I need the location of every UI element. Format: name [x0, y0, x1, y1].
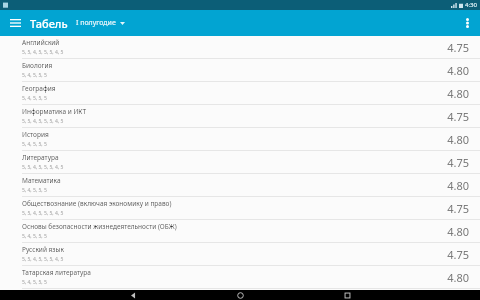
- button[interactable]: Основы безопасности жизнедеятельности (О…: [0, 220, 480, 243]
- staticText: Основы безопасности жизнедеятельности (О…: [22, 222, 177, 231]
- button[interactable]: More options: [454, 10, 480, 36]
- staticText: Английский: [22, 38, 60, 47]
- staticText: 4.75: [447, 201, 469, 216]
- staticText: Информатика и ИКТ: [22, 107, 87, 116]
- button[interactable]: Татарская литература: [0, 266, 480, 289]
- staticText: 4.80: [447, 224, 469, 239]
- staticText: Литература: [22, 153, 59, 162]
- staticText: 4.80: [447, 178, 469, 193]
- button[interactable]: Биология: [0, 59, 480, 82]
- staticText: 4.80: [447, 86, 469, 101]
- staticText: 5, 5, 4, 5, 5, 5, 4, 5: [22, 210, 64, 217]
- staticText: I полугодие: [76, 18, 116, 28]
- staticText: Татарская литература: [22, 268, 91, 277]
- staticText: 5, 4, 5, 5, 5: [22, 141, 47, 148]
- button[interactable]: История: [0, 128, 480, 151]
- staticText: 5, 4, 5, 5, 5: [22, 95, 47, 102]
- staticText: Табель: [30, 16, 68, 31]
- staticText: 5, 4, 5, 5, 5: [22, 72, 47, 79]
- staticText: 4.75: [447, 247, 469, 262]
- staticText: 4.80: [447, 132, 469, 147]
- button[interactable]: Информатика и ИКТ: [0, 105, 480, 128]
- staticText: 5, 5, 4, 5, 5, 5, 4, 5: [22, 49, 64, 56]
- button[interactable]: I полугодие: [75, 14, 126, 32]
- staticText: История: [22, 130, 49, 139]
- button[interactable]: Английский: [0, 36, 480, 59]
- staticText: Обществознание (включая экономику и прав…: [22, 199, 172, 208]
- button[interactable]: Литература: [0, 151, 480, 174]
- button[interactable]: Математика: [0, 174, 480, 197]
- staticText: 5, 5, 4, 5, 5, 5, 4, 5: [22, 164, 64, 171]
- button[interactable]: Open navigation drawer: [0, 10, 30, 36]
- staticText: 4.75: [447, 40, 469, 55]
- staticText: Биология: [22, 61, 53, 70]
- staticText: 5, 5, 4, 5, 5, 5, 4, 5: [22, 256, 64, 263]
- staticText: 5, 4, 5, 5, 5: [22, 233, 47, 240]
- staticText: 5, 5, 4, 5, 5, 5, 4, 5: [22, 118, 64, 125]
- button[interactable]: Recent apps: [330, 290, 364, 300]
- staticText: 5, 4, 5, 5, 5: [22, 279, 47, 286]
- staticText: 4:30: [465, 1, 477, 9]
- staticText: География: [22, 84, 56, 93]
- staticText: 4.80: [447, 270, 469, 285]
- staticText: 4.80: [447, 63, 469, 78]
- staticText: Русский язык: [22, 245, 64, 254]
- button[interactable]: Home: [223, 290, 257, 300]
- staticText: Математика: [22, 176, 61, 185]
- button[interactable]: Русский язык: [0, 243, 480, 266]
- staticText: 4.75: [447, 109, 469, 124]
- staticText: 5, 4, 5, 5, 5: [22, 187, 47, 194]
- staticText: 4.75: [447, 155, 469, 170]
- button[interactable]: География: [0, 82, 480, 105]
- button[interactable]: Back: [116, 290, 150, 300]
- button[interactable]: Обществознание (включая экономику и прав…: [0, 197, 480, 220]
